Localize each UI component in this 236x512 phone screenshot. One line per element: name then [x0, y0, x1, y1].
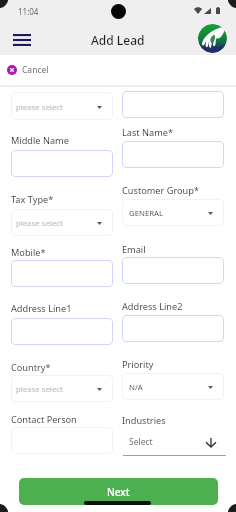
button[interactable]: [122, 91, 224, 118]
button[interactable]: Profile: [198, 24, 227, 53]
staticText: Select: [129, 436, 153, 448]
button[interactable]: please select: [11, 92, 113, 120]
staticText: Address Line1: [11, 302, 72, 315]
staticText: please select: [16, 384, 63, 395]
staticText: Last Name*: [122, 126, 174, 139]
staticText: Cancel: [22, 64, 49, 76]
staticText: Tax Type*: [11, 193, 54, 206]
button[interactable]: [11, 427, 113, 454]
staticText: N/A: [129, 382, 143, 393]
button[interactable]: Select: [122, 430, 226, 456]
staticText: Contact Person: [11, 413, 77, 426]
button[interactable]: Menu: [7, 28, 37, 51]
staticText: Industries: [122, 414, 166, 427]
button[interactable]: Next: [19, 478, 218, 505]
button[interactable]: N/A: [122, 373, 224, 400]
button[interactable]: Cancel: [7, 62, 49, 78]
button[interactable]: [11, 318, 113, 345]
button[interactable]: please select: [11, 209, 113, 236]
button[interactable]: [11, 260, 113, 287]
staticText: please select: [16, 218, 63, 229]
staticText: Add Lead: [91, 32, 145, 48]
button[interactable]: please select: [11, 375, 113, 402]
button[interactable]: [122, 257, 224, 284]
staticText: Country*: [11, 361, 51, 374]
staticText: Mobile*: [11, 246, 46, 259]
staticText: GENERAL: [129, 208, 164, 219]
staticText: 11:04: [18, 6, 39, 17]
staticText: Email: [122, 243, 146, 256]
staticText: Address Line2: [122, 300, 183, 313]
staticText: please select: [16, 102, 63, 113]
button[interactable]: [122, 315, 224, 342]
button[interactable]: GENERAL: [122, 199, 224, 226]
staticText: Priority: [122, 358, 154, 371]
button[interactable]: [11, 150, 113, 177]
staticText: Middle Name: [11, 134, 69, 147]
staticText: Next: [107, 485, 130, 499]
staticText: Customer Group*: [122, 184, 199, 197]
button[interactable]: [122, 141, 224, 168]
